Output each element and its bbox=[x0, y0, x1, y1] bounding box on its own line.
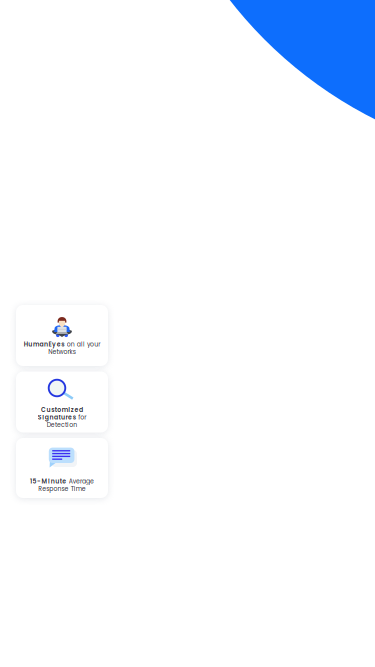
staticText: Response Time bbox=[38, 485, 86, 493]
staticText: Signatures bbox=[38, 413, 76, 422]
button[interactable]: 15-Minute bbox=[16, 438, 108, 498]
button[interactable]: Customized bbox=[16, 371, 108, 432]
staticText: on all your bbox=[67, 340, 100, 349]
staticText: for bbox=[78, 413, 86, 422]
staticText: HumanEyes bbox=[24, 340, 64, 349]
staticText: Average bbox=[69, 477, 94, 486]
staticText: 15-Minute bbox=[30, 477, 66, 486]
button[interactable]: HumanEyes bbox=[16, 305, 108, 366]
staticText: Detection bbox=[47, 421, 77, 429]
staticText: Networks bbox=[48, 348, 76, 356]
staticText: Customized bbox=[41, 405, 83, 414]
